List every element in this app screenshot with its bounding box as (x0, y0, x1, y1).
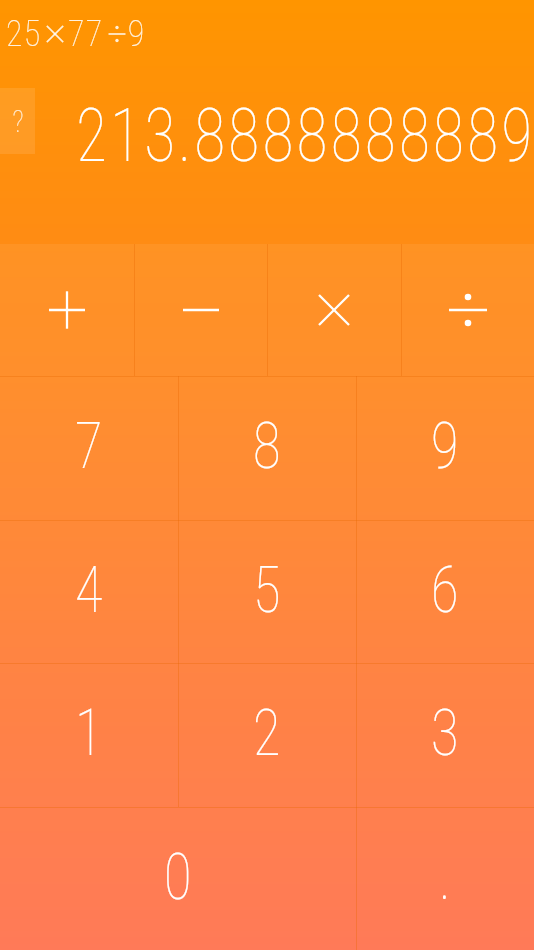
staticText: 77 (68, 13, 104, 55)
staticText: 9 (128, 13, 146, 55)
staticText: 0 (164, 840, 192, 915)
staticText: 25 (6, 13, 42, 55)
button[interactable]: 4 (0, 520, 178, 664)
staticText: ? (12, 102, 23, 140)
staticText: 1 (75, 696, 103, 771)
button[interactable]: Help (0, 88, 35, 154)
button[interactable]: 6 (356, 520, 534, 664)
button[interactable]: 8 (178, 376, 356, 520)
button[interactable]: 7 (0, 376, 178, 520)
button[interactable]: Minus (134, 244, 268, 376)
staticText: 2 (253, 696, 281, 771)
button[interactable]: 3 (356, 663, 534, 807)
button[interactable]: Divide (401, 244, 534, 376)
staticText: 4 (75, 553, 103, 628)
button[interactable]: Multiply (267, 244, 401, 376)
staticText: . (440, 840, 450, 915)
button[interactable]: 0 (0, 807, 356, 950)
staticText: 9 (431, 409, 459, 484)
button[interactable]: . (356, 807, 534, 950)
button[interactable]: Plus (0, 244, 134, 376)
button[interactable]: 1 (0, 663, 178, 807)
staticText: 8 (253, 409, 281, 484)
button[interactable]: 2 (178, 663, 356, 807)
staticText: 213.8888888889 (76, 92, 534, 179)
button[interactable]: 5 (178, 520, 356, 664)
staticText: 6 (431, 553, 459, 628)
staticText: 7 (75, 409, 103, 484)
button[interactable]: 9 (356, 376, 534, 520)
staticText: 3 (431, 696, 459, 771)
staticText: 5 (253, 553, 281, 628)
